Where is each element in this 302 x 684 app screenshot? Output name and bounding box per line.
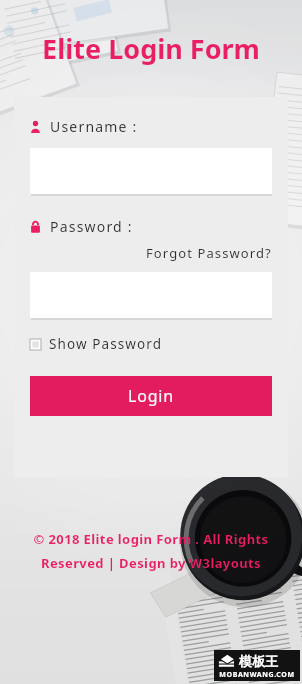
- staticText: Forgot Password?: [146, 244, 272, 262]
- other: mobanwang.com watermark: [214, 650, 300, 681]
- button[interactable]: Show Password: [22, 333, 163, 355]
- staticText: © 2018 Elite login Form . All Rights Res…: [18, 530, 284, 572]
- staticText: Login: [128, 385, 174, 407]
- staticText: Password :: [50, 217, 133, 236]
- staticText: Username :: [50, 117, 138, 136]
- button[interactable]: Login: [30, 376, 272, 416]
- staticText: Show Password: [49, 335, 163, 353]
- staticText: 模板王: [239, 653, 278, 669]
- button[interactable]: Forgot Password?: [146, 243, 280, 263]
- staticText: Elite Login Form: [42, 30, 260, 67]
- staticText: MOBANWANG.COM: [214, 670, 300, 680]
